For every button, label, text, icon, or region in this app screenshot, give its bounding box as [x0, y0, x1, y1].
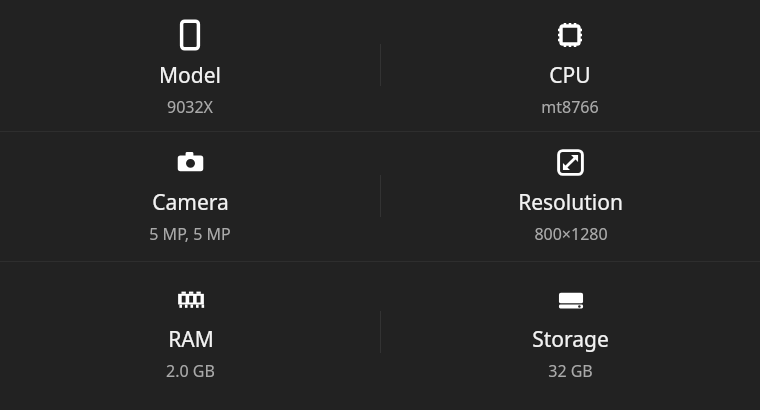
- staticText: CPU: [549, 61, 591, 90]
- staticText: 2.0 GB: [166, 360, 215, 382]
- button[interactable]: RAM: [166, 286, 215, 382]
- staticText: 32 GB: [548, 360, 593, 382]
- button[interactable]: Model: [159, 20, 221, 118]
- button[interactable]: Storage: [532, 286, 609, 382]
- staticText: 9032X: [167, 96, 213, 118]
- button[interactable]: Resolution: [518, 148, 623, 245]
- staticText: Resolution: [518, 188, 623, 217]
- staticText: Camera: [152, 188, 229, 217]
- staticText: mt8766: [541, 96, 599, 118]
- button[interactable]: Camera: [149, 148, 231, 245]
- staticText: Model: [159, 61, 221, 90]
- button[interactable]: CPU: [541, 20, 599, 118]
- staticText: RAM: [168, 325, 214, 354]
- staticText: 5 MP, 5 MP: [149, 223, 231, 245]
- staticText: Storage: [532, 325, 609, 354]
- staticText: 800×1280: [534, 223, 608, 245]
